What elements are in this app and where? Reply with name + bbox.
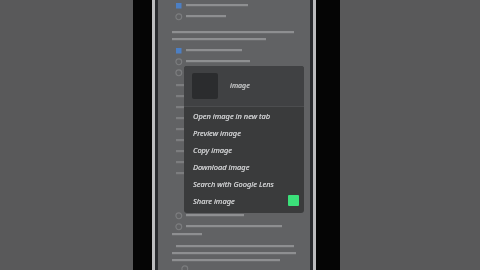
staticText: image: [230, 81, 250, 91]
staticText: Open image in new tab: [193, 111, 271, 121]
button[interactable]: Preview image: [184, 124, 304, 141]
button[interactable]: Open image in new tab: [184, 107, 304, 124]
other: Tap indicator: [288, 195, 299, 206]
button[interactable]: image: [184, 66, 304, 106]
button[interactable]: Download image: [184, 158, 304, 175]
button[interactable]: Copy image: [184, 141, 304, 158]
staticText: Share image: [193, 196, 235, 206]
staticText: Search with Google Lens: [193, 179, 274, 189]
button[interactable]: Share image: [184, 192, 304, 209]
staticText: Preview image: [193, 128, 241, 138]
staticText: Copy image: [193, 145, 233, 155]
staticText: Download image: [193, 162, 250, 172]
button[interactable]: Search with Google Lens: [184, 175, 304, 192]
